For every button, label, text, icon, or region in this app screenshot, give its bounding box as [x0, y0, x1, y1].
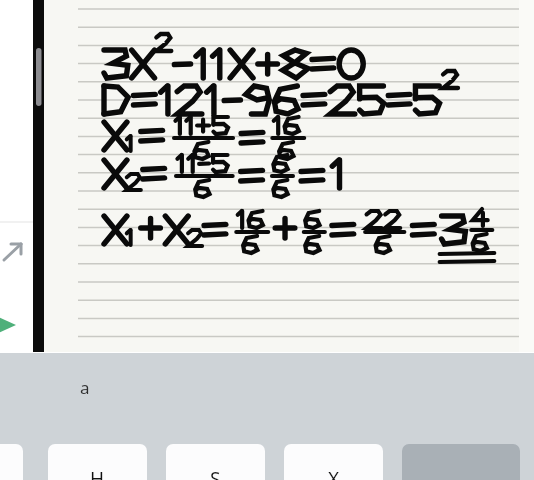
button[interactable]: a: [44, 365, 124, 411]
staticText: a: [80, 376, 90, 399]
button[interactable]: X: [284, 444, 383, 480]
button[interactable]: S: [166, 444, 265, 480]
staticText: X: [328, 466, 340, 480]
staticText: H: [90, 466, 105, 480]
button[interactable]: Expand: [0, 236, 33, 274]
button[interactable]: H: [48, 444, 147, 480]
button[interactable]: [0, 444, 23, 480]
staticText: S: [210, 466, 221, 480]
button[interactable]: Play: [0, 306, 33, 344]
